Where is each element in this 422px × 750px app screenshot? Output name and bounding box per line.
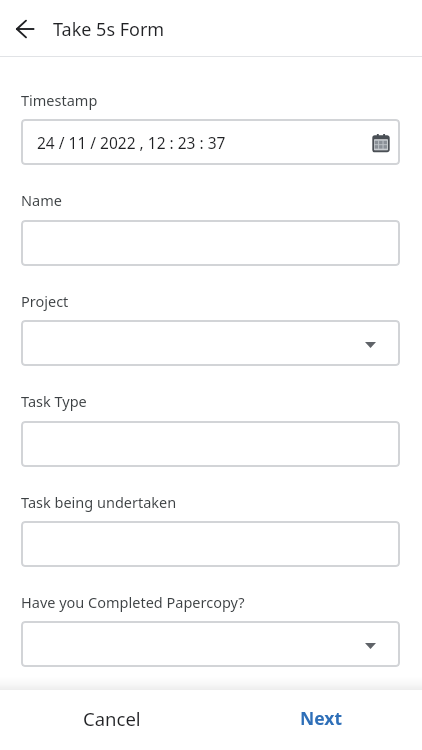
staticText: Have you Completed Papercopy? xyxy=(21,592,245,612)
button[interactable] xyxy=(21,621,400,667)
button[interactable]: 24 / 11 / 2022 , 12 : 23 : 37 xyxy=(21,119,400,165)
staticText: Task Type xyxy=(21,391,87,411)
button[interactable] xyxy=(21,421,400,467)
staticText: Name xyxy=(21,190,62,210)
staticText: 24 / 11 / 2022 , 12 : 23 : 37 xyxy=(37,132,226,153)
button[interactable]: Next xyxy=(286,697,357,739)
button[interactable]: Pick date and time xyxy=(369,131,393,155)
button[interactable]: Cancel xyxy=(69,697,155,740)
button[interactable] xyxy=(21,320,400,366)
staticText: Project xyxy=(21,291,69,311)
staticText: Cancel xyxy=(83,706,141,731)
staticText: Task being undertaken xyxy=(21,492,177,512)
button[interactable] xyxy=(21,220,400,266)
staticText: Next xyxy=(300,706,343,730)
staticText: Timestamp xyxy=(21,90,98,110)
staticText: Take 5s Form xyxy=(53,17,165,42)
button[interactable] xyxy=(21,521,400,567)
button[interactable]: Back xyxy=(3,5,51,53)
